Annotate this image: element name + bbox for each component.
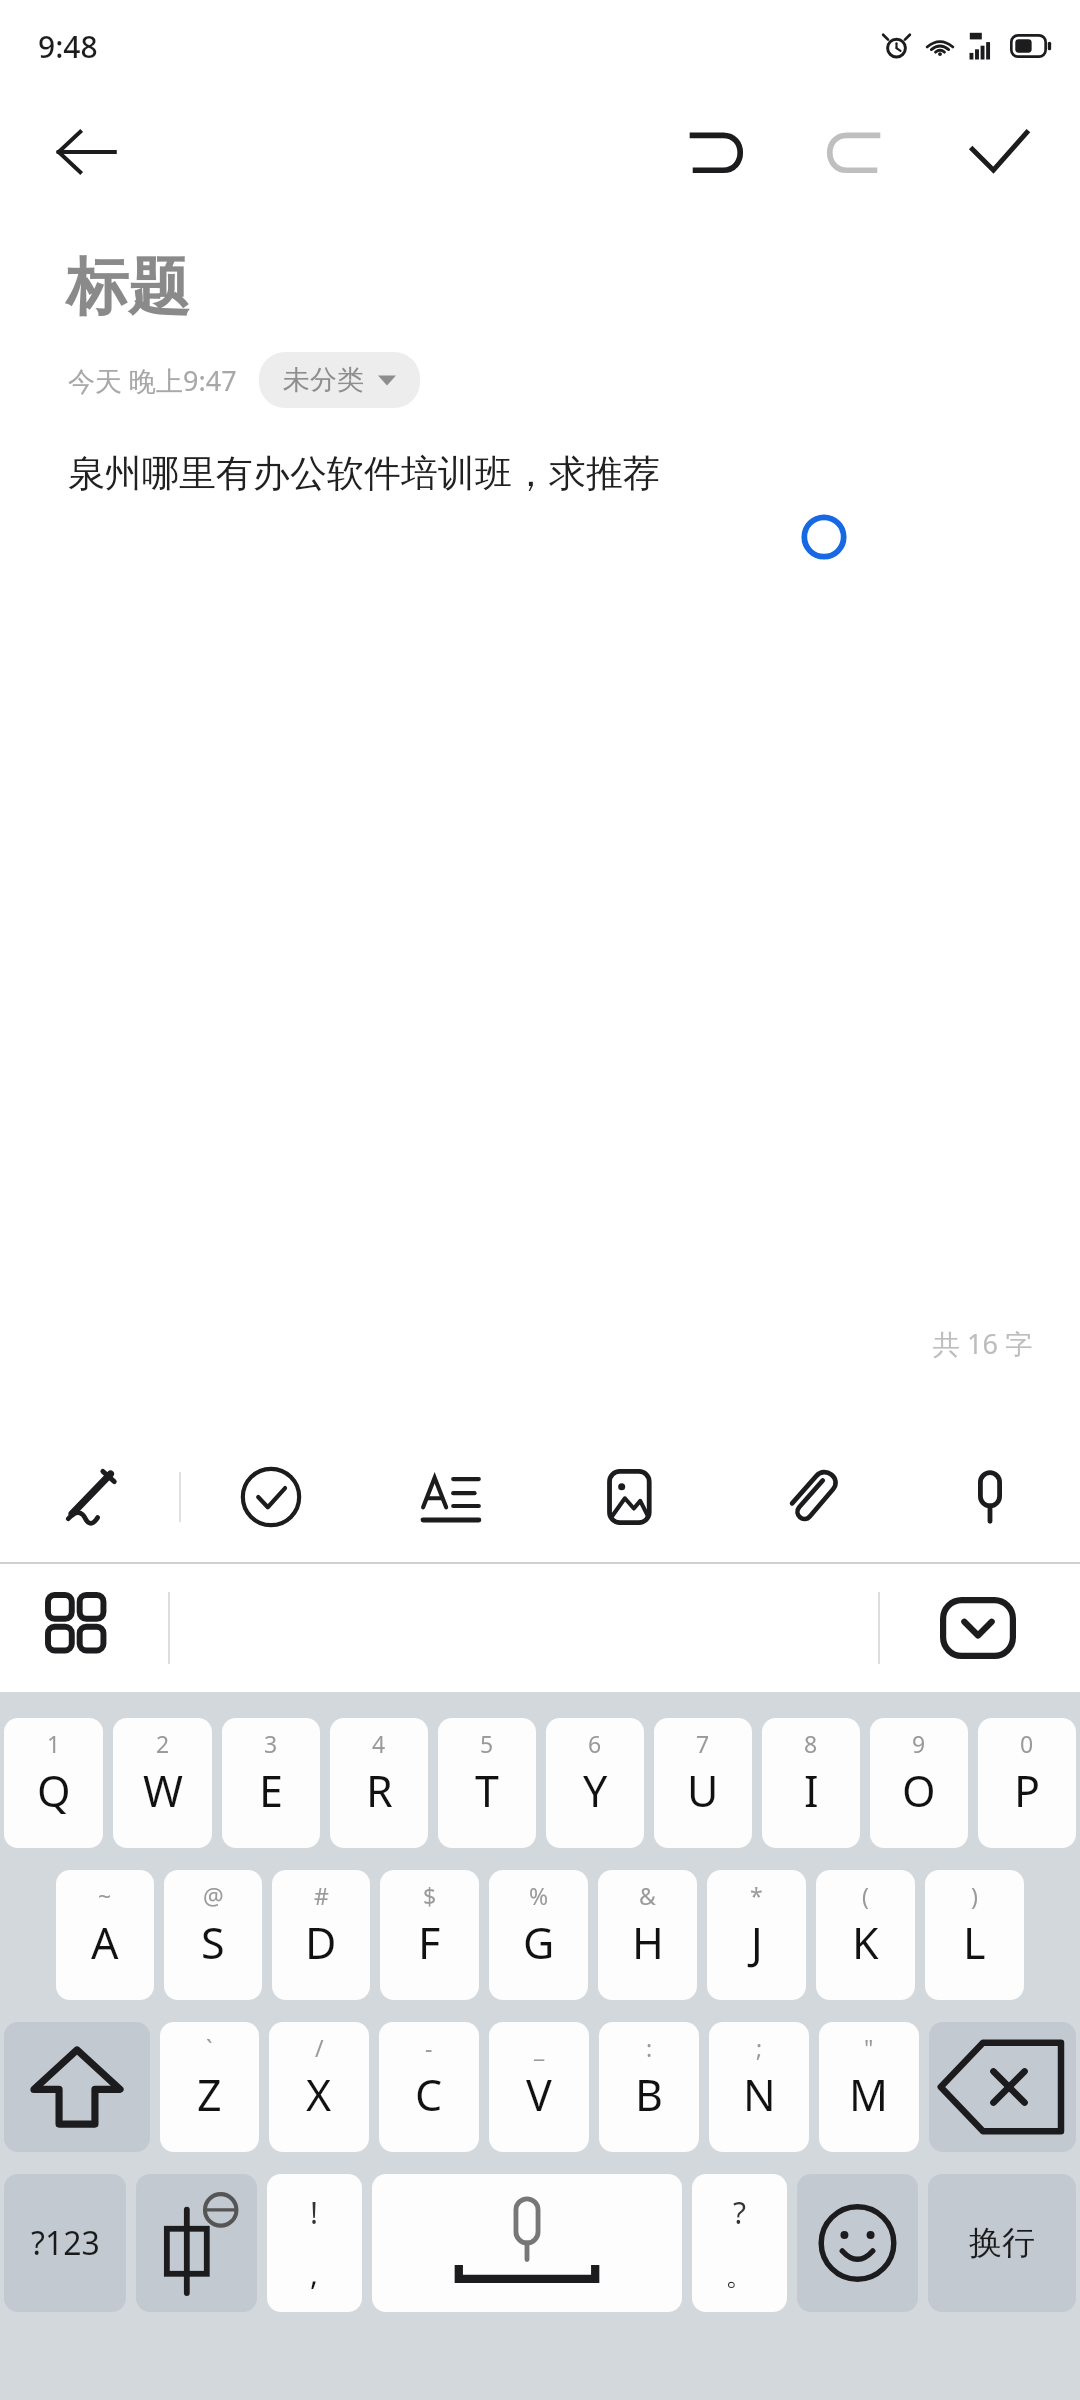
button[interactable]: Undo [676, 114, 752, 190]
staticText: - [425, 2032, 433, 2063]
staticText: 泉州哪里有办公软件培训班，求推荐 [68, 450, 660, 497]
staticText: ! [310, 2192, 319, 2233]
button[interactable]: Attach file [720, 1432, 900, 1562]
button[interactable]: Handwriting [0, 1432, 179, 1562]
staticText: T [475, 1761, 499, 1820]
staticText: L [963, 1913, 986, 1972]
button[interactable]: Shift [4, 2022, 150, 2152]
button[interactable]: 6 [546, 1718, 644, 1848]
staticText: 9:48 [38, 26, 98, 67]
button[interactable]: & [598, 1870, 697, 2000]
button[interactable]: 换行 [928, 2174, 1076, 2312]
staticText: 8 [804, 1728, 818, 1759]
staticText: 9 [912, 1728, 926, 1759]
staticText: 未分类 [283, 363, 364, 397]
staticText: A [91, 1913, 119, 1972]
staticText: D [305, 1913, 337, 1972]
staticText: I [804, 1761, 819, 1820]
button[interactable]: Done [960, 114, 1036, 190]
button[interactable]: 3 [222, 1718, 320, 1848]
staticText: 3 [264, 1728, 278, 1759]
button[interactable]: Back [50, 116, 122, 188]
staticText: B [635, 2065, 663, 2124]
button[interactable]: : [599, 2022, 699, 2152]
staticText: ; [756, 2032, 763, 2063]
staticText: 6 [588, 1728, 602, 1759]
button[interactable]: ~ [56, 1870, 154, 2000]
staticText: 。 [725, 2256, 755, 2294]
button[interactable]: Hide keyboard [940, 1597, 1016, 1659]
staticText: S [201, 1913, 225, 1972]
button[interactable]: 8 [762, 1718, 860, 1848]
staticText: / [315, 2032, 324, 2063]
button[interactable]: 未分类 [259, 352, 420, 408]
button[interactable]: ? [692, 2174, 787, 2312]
button[interactable]: Insert image [540, 1432, 720, 1562]
staticText: * [750, 1880, 763, 1911]
button[interactable]: 5 [438, 1718, 536, 1848]
staticText: # [314, 1880, 329, 1911]
button[interactable]: " [819, 2022, 919, 2152]
staticText: 7 [696, 1728, 710, 1759]
staticText: 标题 [66, 248, 190, 326]
staticText: % [529, 1880, 549, 1911]
staticText: ` [206, 2032, 213, 2063]
button[interactable]: Voice input [900, 1432, 1080, 1562]
button[interactable]: Redo [818, 114, 894, 190]
staticText: ?123 [31, 2221, 100, 2265]
staticText: O [902, 1761, 936, 1820]
button[interactable]: ! [267, 2174, 362, 2312]
staticText: _ [534, 2032, 545, 2063]
staticText: N [743, 2065, 776, 2124]
button[interactable]: Keyboard menu [48, 1595, 114, 1661]
staticText: M [849, 2065, 889, 2124]
button[interactable]: ?123 [4, 2174, 126, 2312]
button[interactable]: _ [489, 2022, 589, 2152]
button[interactable]: Space [372, 2174, 682, 2312]
button[interactable]: $ [380, 1870, 479, 2000]
staticText: P [1014, 1761, 1041, 1820]
button[interactable]: 9 [870, 1718, 968, 1848]
button[interactable]: ` [160, 2022, 259, 2152]
staticText: 2 [156, 1728, 170, 1759]
staticText: J [751, 1913, 763, 1972]
button[interactable]: 4 [330, 1718, 428, 1848]
staticText: ~ [98, 1880, 112, 1911]
staticText: R [366, 1761, 393, 1820]
staticText: $ [423, 1880, 437, 1911]
staticText: ? [733, 2192, 747, 2233]
button[interactable]: 2 [113, 1718, 212, 1848]
button[interactable]: % [489, 1870, 588, 2000]
button[interactable]: 7 [654, 1718, 752, 1848]
staticText: K [852, 1913, 879, 1972]
button[interactable]: 0 [978, 1718, 1076, 1848]
button[interactable]: - [379, 2022, 479, 2152]
button[interactable]: / [269, 2022, 369, 2152]
staticText: Y [583, 1761, 608, 1820]
button[interactable]: ) [925, 1870, 1024, 2000]
staticText: Q [37, 1761, 71, 1820]
staticText: @ [203, 1880, 224, 1911]
button[interactable]: ; [709, 2022, 809, 2152]
button[interactable]: @ [164, 1870, 262, 2000]
staticText: & [639, 1880, 656, 1911]
button[interactable]: * [707, 1870, 806, 2000]
staticText: U [687, 1761, 719, 1820]
staticText: V [526, 2065, 552, 2124]
button[interactable]: Text format [360, 1432, 540, 1562]
button[interactable]: # [272, 1870, 370, 2000]
staticText: ) [971, 1880, 978, 1911]
button[interactable]: Switch language [136, 2174, 257, 2312]
staticText: H [632, 1913, 664, 1972]
staticText: 今天 晚上9:47 [68, 362, 237, 399]
staticText: 1 [47, 1728, 61, 1759]
button[interactable]: ( [816, 1870, 915, 2000]
staticText: E [259, 1761, 283, 1820]
staticText: : [646, 2032, 653, 2063]
button[interactable]: Backspace [929, 2022, 1076, 2152]
staticText: 5 [480, 1728, 494, 1759]
button[interactable]: Checklist [181, 1432, 360, 1562]
button[interactable]: 1 [4, 1718, 103, 1848]
staticText: G [523, 1913, 555, 1972]
button[interactable]: Emoji [797, 2174, 918, 2312]
